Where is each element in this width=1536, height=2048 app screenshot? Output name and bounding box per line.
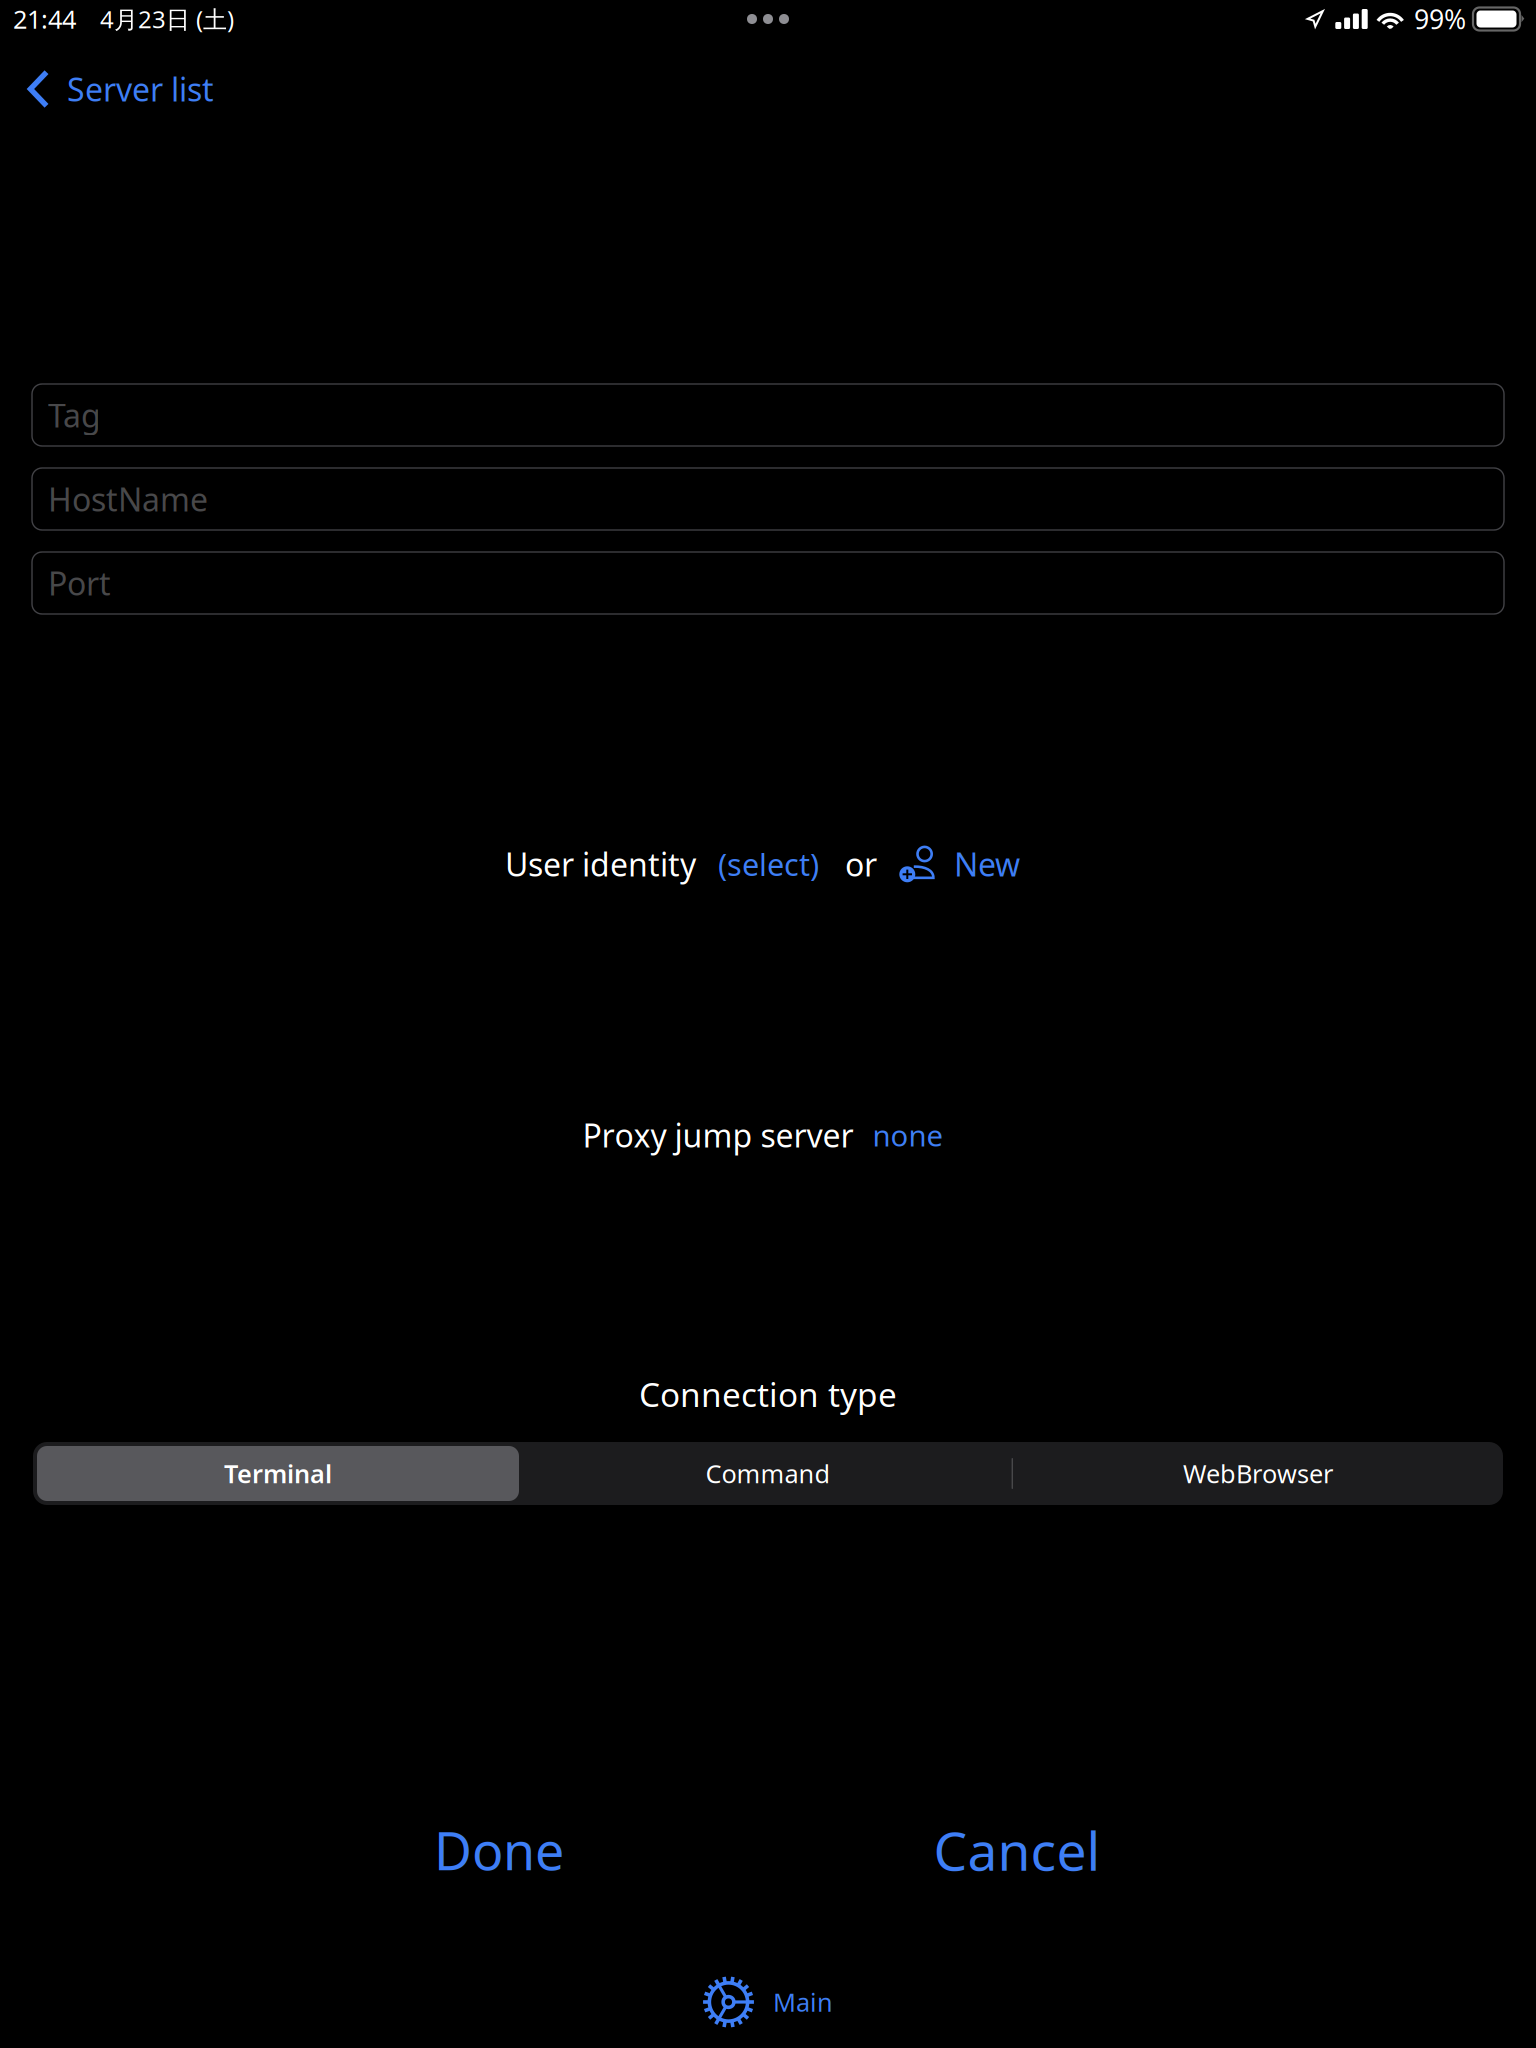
button[interactable]: Done: [369, 1814, 629, 1886]
staticText: none: [872, 1115, 943, 1154]
staticText: HostName: [48, 478, 208, 520]
button[interactable]: Terminal: [33, 1442, 523, 1505]
staticText: or: [845, 843, 877, 885]
staticText: Tag: [48, 394, 101, 436]
staticText: Done: [434, 1815, 564, 1885]
staticText: Terminal: [224, 1457, 332, 1490]
staticText: Connection type: [639, 1372, 897, 1416]
staticText: Cancel: [933, 1815, 1100, 1885]
staticText: Command: [705, 1457, 830, 1490]
staticText: User identity: [505, 843, 696, 885]
button[interactable]: Server list: [0, 62, 236, 116]
staticText: Proxy jump server: [582, 1114, 853, 1156]
button[interactable]: New: [888, 838, 1031, 890]
button[interactable]: Tag: [32, 384, 1504, 446]
button[interactable]: HostName: [32, 468, 1504, 530]
button[interactable]: Port: [32, 552, 1504, 614]
staticText: 99%: [1414, 1, 1466, 37]
button[interactable]: (select): [707, 838, 830, 890]
button[interactable]: WebBrowser: [1013, 1442, 1503, 1505]
staticText: Port: [48, 562, 111, 604]
staticText: Server list: [67, 68, 214, 110]
button[interactable]: none: [862, 1109, 953, 1161]
staticText: 4月23日 (土): [100, 3, 234, 35]
staticText: 21:44: [13, 2, 76, 36]
staticText: WebBrowser: [1183, 1457, 1333, 1490]
staticText: (select): [718, 844, 819, 884]
button[interactable]: Main: [685, 1974, 851, 2030]
button[interactable]: Command: [523, 1442, 1013, 1505]
staticText: Main: [773, 1985, 833, 2019]
staticText: New: [954, 843, 1020, 885]
button[interactable]: Cancel: [887, 1814, 1147, 1886]
